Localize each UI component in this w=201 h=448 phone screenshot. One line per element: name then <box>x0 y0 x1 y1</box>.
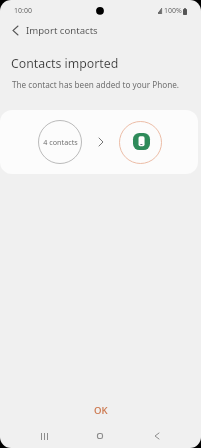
button[interactable] <box>119 121 162 164</box>
button[interactable]: 4 contacts <box>38 120 82 164</box>
button[interactable]: OK <box>0 400 201 420</box>
button[interactable]: Home <box>85 424 114 448</box>
staticText: Contacts imported <box>11 55 119 72</box>
staticText: Import contacts <box>26 24 98 37</box>
button[interactable]: Back <box>5 20 25 40</box>
staticText: 4 contacts <box>43 137 78 147</box>
button[interactable]: Back <box>142 424 171 448</box>
staticText: The contact has been added to your Phone… <box>12 79 180 90</box>
staticText: 100% <box>164 6 182 16</box>
staticText: OK <box>94 404 108 417</box>
staticText: 10:00 <box>14 6 32 16</box>
button[interactable]: Recent apps <box>30 424 59 448</box>
